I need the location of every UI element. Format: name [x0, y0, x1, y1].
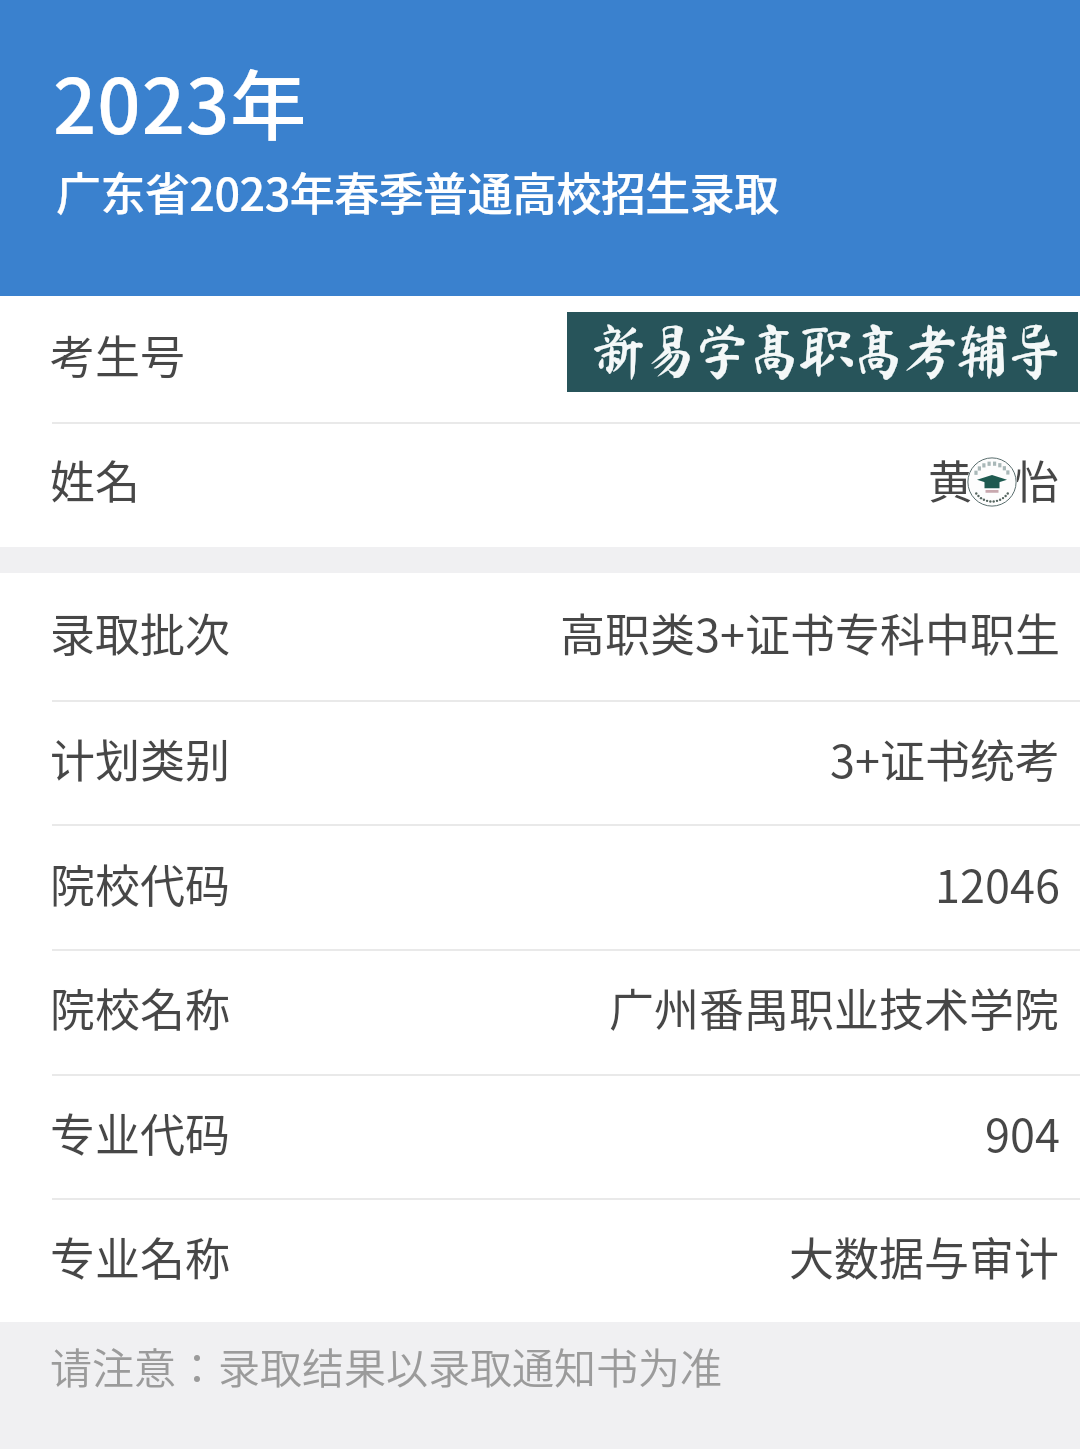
button[interactable]: 专业代码: [0, 1076, 1080, 1198]
staticText: 新易学高职高考辅导: [589, 321, 1058, 380]
staticText: 12046: [935, 851, 1060, 916]
button[interactable]: 录取批次: [0, 573, 1080, 700]
staticText: 录取批次: [50, 600, 231, 665]
button[interactable]: 姓名: [0, 422, 1080, 547]
staticText: 2023年: [53, 46, 308, 156]
staticText: 怡: [1014, 447, 1060, 512]
staticText: 黄: [928, 447, 974, 512]
staticText: 计划类别: [50, 726, 231, 791]
staticText: 大数据与审计: [789, 1224, 1060, 1289]
button[interactable]: 考生号: [0, 296, 1080, 422]
staticText: 3+证书统考: [830, 726, 1060, 791]
staticText: 专业代码: [50, 1100, 231, 1165]
staticText: 广东省2023年春季普通高校招生录取: [56, 159, 779, 224]
other: School seal: [967, 457, 1017, 507]
staticText: 考生号: [50, 322, 186, 387]
staticText: 广州番禺职业技术学院: [609, 975, 1060, 1040]
button[interactable]: 院校代码: [0, 826, 1080, 949]
staticText: 姓名: [50, 447, 141, 512]
button[interactable]: 专业名称: [0, 1200, 1080, 1322]
staticText: 专业名称: [50, 1224, 231, 1289]
staticText: 高职类3+证书专科中职生: [560, 600, 1060, 665]
button[interactable]: 院校名称: [0, 951, 1080, 1074]
staticText: 院校代码: [50, 851, 231, 916]
staticText: 请注意：录取结果以录取通知书为准: [50, 1335, 723, 1396]
staticText: 院校名称: [50, 975, 231, 1040]
button[interactable]: 计划类别: [0, 702, 1080, 824]
staticText: 904: [985, 1100, 1060, 1165]
